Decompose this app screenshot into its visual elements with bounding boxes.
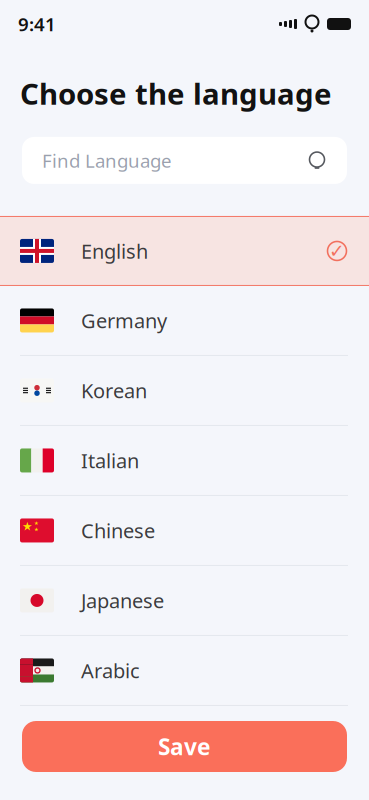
staticText: Germany xyxy=(81,307,167,334)
staticText: Save xyxy=(158,731,211,761)
staticText: 9:41 xyxy=(18,12,56,36)
staticText: ★ xyxy=(34,520,39,526)
staticText: ★ xyxy=(34,526,39,532)
staticText: Arabic xyxy=(81,657,140,684)
staticText: Japanese xyxy=(81,587,164,614)
button[interactable]: English xyxy=(0,216,369,286)
staticText: Choose the language xyxy=(20,74,332,113)
staticText: Italian xyxy=(81,447,139,474)
button[interactable]: Save xyxy=(0,721,369,772)
button[interactable]: Germany xyxy=(0,286,369,356)
staticText: ★ xyxy=(22,519,33,533)
button[interactable]: Japanese xyxy=(0,566,369,636)
button[interactable]: ★ xyxy=(0,496,369,566)
staticText: English xyxy=(81,238,148,264)
button[interactable]: Arabic xyxy=(0,636,369,706)
staticText: Chinese xyxy=(81,517,155,544)
staticText: ✓ xyxy=(329,240,345,262)
button[interactable]: Korean xyxy=(0,356,369,426)
staticText: Find Language xyxy=(42,148,172,173)
staticText: Korean xyxy=(81,377,147,404)
button[interactable]: Italian xyxy=(0,426,369,496)
